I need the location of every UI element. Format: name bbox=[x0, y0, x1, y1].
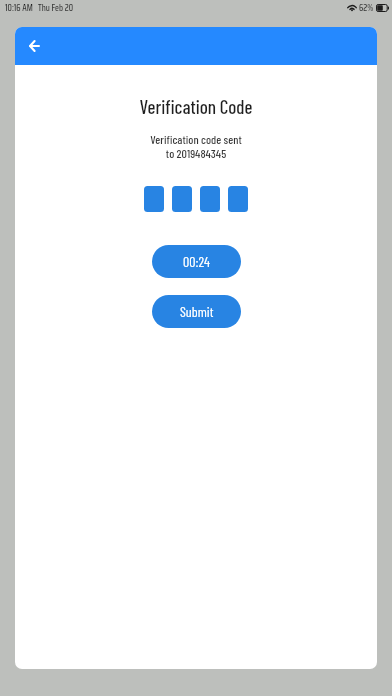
button[interactable]: Code digit 4 bbox=[228, 186, 248, 212]
staticText: 10:16 AM bbox=[5, 1, 33, 15]
staticText: Verification code sent to 2019484345 bbox=[15, 132, 377, 160]
button[interactable]: Code digit 1 bbox=[144, 186, 164, 212]
staticText: Submit bbox=[180, 303, 214, 320]
button[interactable]: Back bbox=[19, 31, 49, 61]
staticText: 00:24 bbox=[183, 253, 210, 270]
staticText: Verification Code bbox=[15, 95, 377, 118]
button[interactable]: Submit bbox=[152, 295, 241, 328]
button[interactable]: Code digit 3 bbox=[200, 186, 220, 212]
button[interactable]: Code digit 2 bbox=[172, 186, 192, 212]
button[interactable]: 00:24 bbox=[152, 245, 241, 278]
staticText: Thu Feb 20 bbox=[38, 1, 73, 15]
staticText: 62% bbox=[359, 1, 374, 15]
